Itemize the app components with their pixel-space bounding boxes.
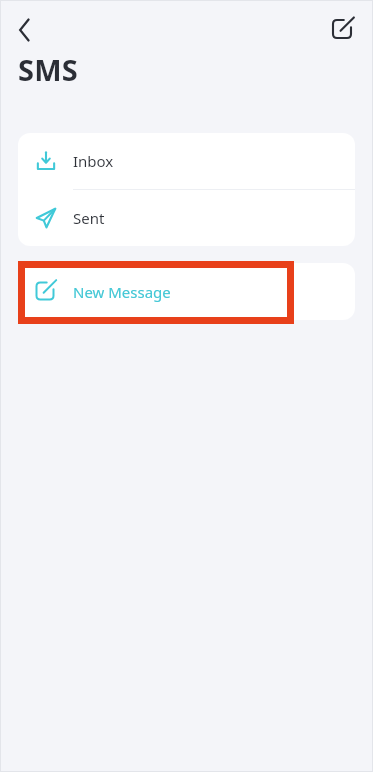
button[interactable]: Back [8,13,42,47]
button[interactable]: Sent [18,190,355,246]
button[interactable]: New Message [18,263,355,320]
staticText: SMS [18,50,78,89]
button[interactable]: Inbox [18,133,355,189]
staticText: Sent [73,208,105,228]
staticText: Inbox [73,151,114,171]
staticText: New Message [73,282,171,302]
button[interactable]: New Message [326,13,360,47]
